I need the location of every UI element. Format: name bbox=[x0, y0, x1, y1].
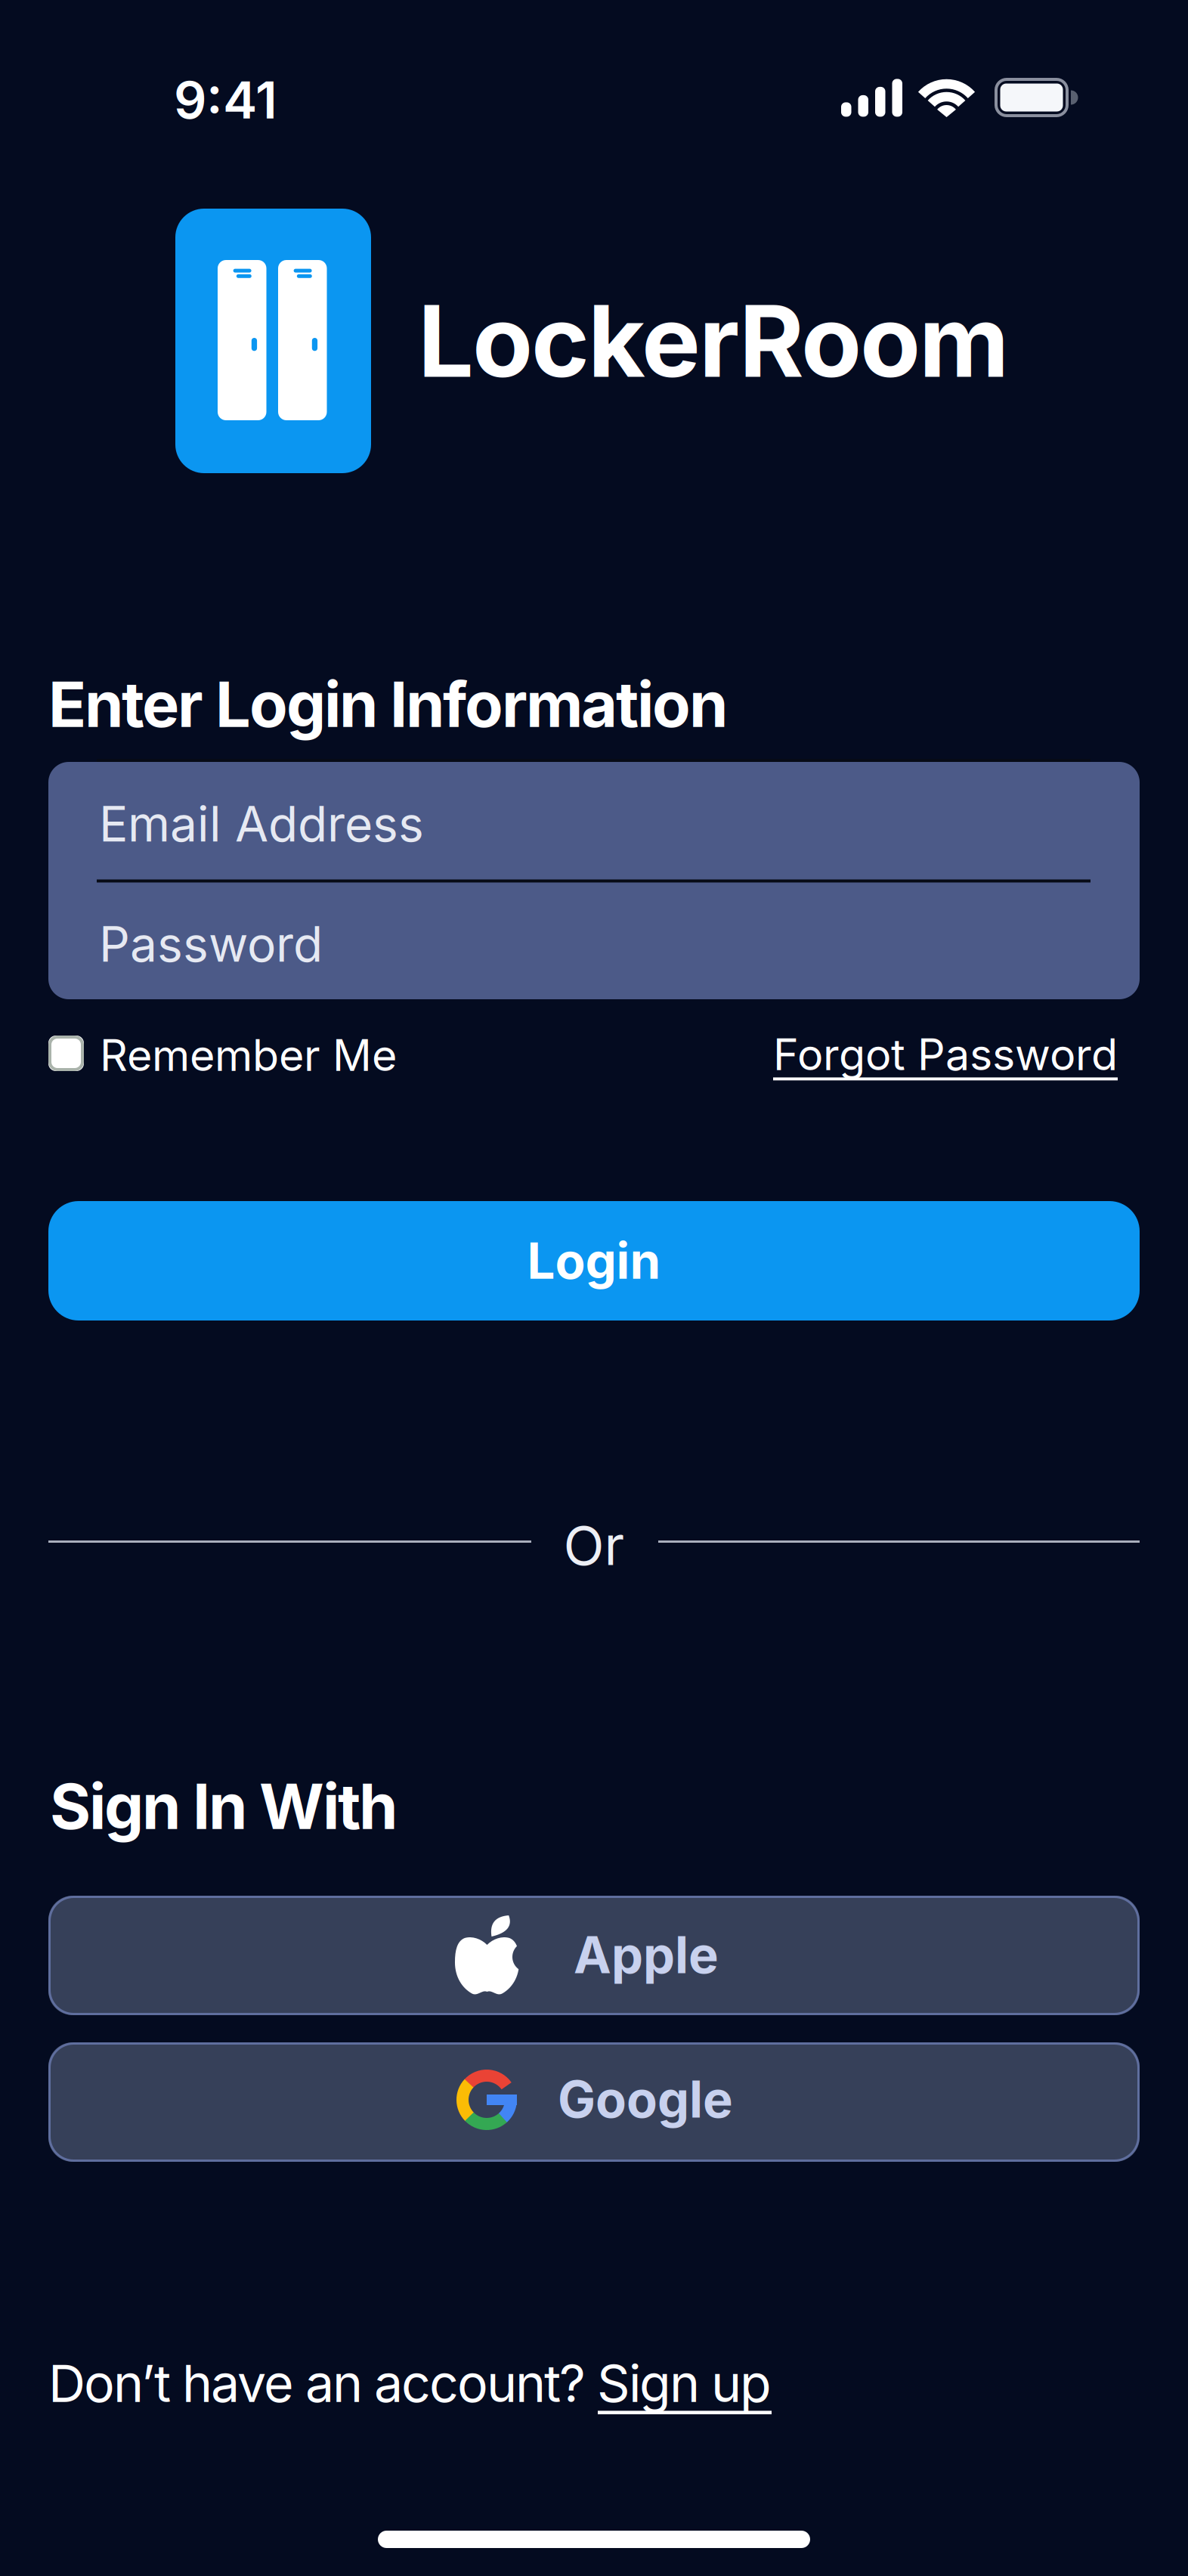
button[interactable]: Login bbox=[48, 1201, 1140, 1321]
staticText: Sign In With bbox=[50, 1769, 398, 1843]
staticText: Forgot Password bbox=[773, 1029, 1118, 1080]
staticText: Password bbox=[99, 916, 323, 973]
staticText: LockerRoom bbox=[418, 283, 1009, 399]
staticText: Email Address bbox=[99, 795, 424, 852]
staticText: Or bbox=[563, 1514, 625, 1577]
staticText: Google bbox=[558, 2070, 733, 2129]
button[interactable]: Don’t have an account? Sign up bbox=[48, 2353, 772, 2414]
staticText: Don’t have an account? Sign up bbox=[48, 2353, 772, 2414]
staticText: Enter Login Information bbox=[48, 667, 728, 741]
staticText: Apple bbox=[574, 1925, 719, 1985]
button[interactable]: Password bbox=[48, 882, 1140, 1000]
button[interactable]: Apple bbox=[48, 1896, 1140, 2015]
button[interactable]: Remember Me bbox=[48, 1029, 472, 1076]
staticText: 9:41 bbox=[174, 70, 277, 130]
staticText: Login bbox=[527, 1232, 661, 1290]
button[interactable]: Google bbox=[48, 2042, 1140, 2162]
button[interactable]: Forgot Password bbox=[773, 1029, 1118, 1080]
staticText: Remember Me bbox=[100, 1029, 397, 1081]
button[interactable]: Email Address bbox=[48, 762, 1140, 880]
